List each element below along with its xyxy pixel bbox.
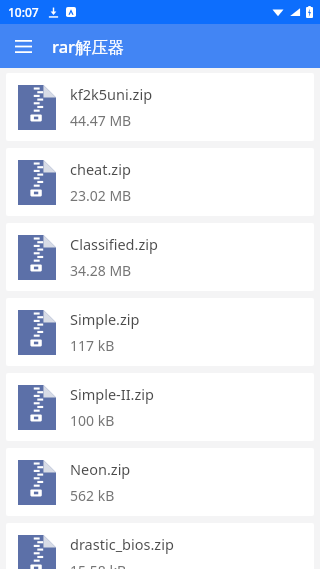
staticText: cheat.zip: [70, 159, 131, 179]
staticText: 10:07: [8, 4, 39, 20]
staticText: 562 kB: [70, 486, 115, 505]
button[interactable]: Simple.zip: [6, 298, 314, 366]
button[interactable]: kf2k5uni.zip: [6, 73, 314, 141]
button[interactable]: drastic_bios.zip: [6, 523, 314, 569]
staticText: 23.02 MB: [70, 186, 132, 205]
button[interactable]: Open navigation menu: [10, 33, 36, 59]
staticText: Classified.zip: [70, 234, 158, 254]
staticText: 100 kB: [70, 411, 115, 430]
staticText: Neon.zip: [70, 459, 131, 479]
button[interactable]: Classified.zip: [6, 223, 314, 291]
button[interactable]: Neon.zip: [6, 448, 314, 516]
staticText: drastic_bios.zip: [70, 534, 174, 554]
staticText: Simple.zip: [70, 309, 140, 329]
staticText: 34.28 MB: [70, 261, 132, 280]
staticText: Simple-II.zip: [70, 384, 154, 404]
staticText: 44.47 MB: [70, 111, 132, 130]
button[interactable]: cheat.zip: [6, 148, 314, 216]
staticText: 15.58 kB: [70, 561, 126, 569]
staticText: 117 kB: [70, 336, 115, 355]
button[interactable]: Simple-II.zip: [6, 373, 314, 441]
staticText: rar解压器: [52, 35, 125, 58]
staticText: kf2k5uni.zip: [70, 84, 153, 104]
